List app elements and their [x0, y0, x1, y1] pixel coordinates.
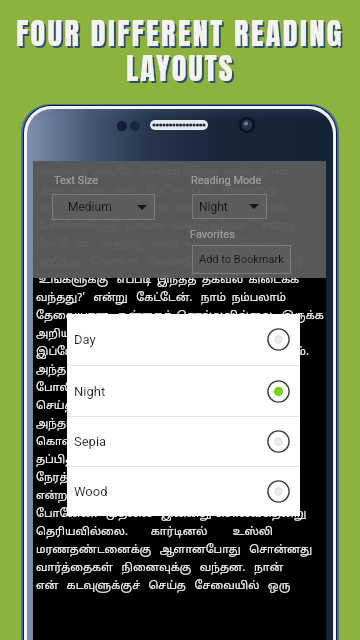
staticText: நேரத்தில் தகவல் கொடுத்ததாகவே ஏற்படும்!': [36, 471, 296, 489]
staticText: செய்தி கேட்டு அவர் திடுக்கிட்டார். கது: [36, 399, 275, 417]
staticText: Night: [74, 384, 267, 399]
staticText: புரட்சிக்காரனை பற்றி நான் சொன்னேன்: [36, 201, 287, 219]
staticText: என்றார். இதைக் கேட்டு நான் திகைத்துப்: [36, 489, 291, 507]
staticText: Night: [199, 200, 228, 214]
staticText: கொலைகாரன் யார் என்பது தெரியுமா? யல்: [36, 435, 295, 453]
staticText: வார்த்தைகள் நினைவுக்கு வந்தன. நான்: [36, 561, 284, 579]
staticText: FOUR DIFFERENT READING: [16, 11, 344, 56]
button[interactable]: Night: [67, 366, 300, 416]
button[interactable]: Sepia: [67, 417, 300, 466]
staticText: மரணதண்டனைக்கு ஆளானபோது சொன்னது: [36, 543, 313, 561]
staticText: Sepia: [74, 434, 267, 449]
other: Open Medium dropdown: [137, 205, 147, 210]
button[interactable]: Night: [192, 194, 267, 219]
staticText: அவர்கள் அங்கே சென்ற பிறகு தான் நான்: [36, 165, 289, 183]
staticText: அந்தப் பையன் சொன்னதை நம்பலாம். ள்.: [36, 417, 297, 435]
staticText: போலீஸுக்குத் தகவல் கொடுத்தேன்?' என்று: [36, 219, 296, 237]
staticText: Wood: [74, 484, 267, 499]
staticText: Reading Mode: [191, 174, 262, 187]
button[interactable]: Medium: [52, 194, 155, 220]
other: Open Night dropdown: [249, 204, 259, 209]
staticText: தெரியவில்லை. கார்டினல் உஸ்லி: [36, 525, 273, 543]
button[interactable]: Wood: [67, 467, 300, 516]
staticText: LAYOUTS: [128, 48, 237, 93]
staticText: அறியாமல் இருந்தது ஒரு வகையில் எது: [36, 327, 288, 345]
staticText: அறிந்து கொள்ள வேண்டும் என்ற ஆவலார்.: [36, 255, 308, 273]
staticText: தேவையான ஒன்றைச் சொல்லவில்லை. இருக்க: [36, 309, 324, 327]
staticText: 'அது எப்படி என் பேரில் பழி விழுந்தது: [36, 183, 278, 201]
staticText: Text Size: [54, 174, 99, 187]
staticText: வந்தது?' என்று கேட்டேன். நாம் நம்பலாம்: [36, 291, 286, 309]
staticText: என் கடவுளுக்குச் செய்த சேவையில் ஒரு: [36, 579, 291, 597]
staticText: LAYOUTS: [126, 46, 235, 91]
staticText: போனேன். முதலில் இன்னது சொல்வதென்று: [36, 507, 307, 525]
button[interactable]: Add to Bookmark: [192, 245, 291, 274]
staticText: அந்த நேரத்தில் ஒன்றும் தோன்றவில்லை.: [36, 363, 293, 381]
staticText: 'உங்களுக்கு எப்படி இந்தத் தகவல் கிடைக்க: [36, 273, 300, 291]
staticText: Medium: [68, 200, 112, 214]
staticText: FOUR DIFFERENT READING: [18, 13, 346, 58]
staticText: Add to Bookmark: [199, 253, 284, 266]
staticText: தப்பித்துக் கொள்வதற்காகக் கடைசி: [36, 453, 277, 471]
staticText: இப்போது என்ன செய்வது என்பதைப் பற்றும்.: [36, 345, 309, 363]
staticText: கேட்டேன். அதற்கு அவர் சொன்னதெல்லாம்: [36, 237, 295, 255]
staticText: Favorites: [190, 228, 235, 241]
staticText: Day: [74, 332, 267, 347]
staticText: போலீஸ்காரர் ஒருவர் வந்து நின்றார். அறிப்: [36, 381, 296, 399]
button[interactable]: Day: [67, 314, 300, 365]
